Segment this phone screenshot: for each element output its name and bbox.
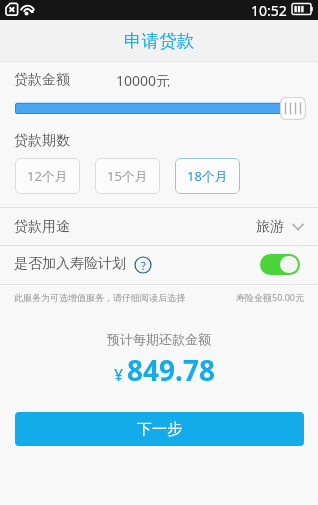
staticText: 10:52 [251,1,287,20]
staticText: 18个月 [187,167,228,185]
button[interactable] [260,254,300,275]
staticText: 15个月 [107,167,148,185]
staticText: 10000元 [116,71,171,87]
staticText: 贷款金额 [14,71,70,87]
staticText: 下一步 [137,420,182,439]
button[interactable]: 12个月 [15,158,80,194]
staticText: 贷款用途 [14,218,70,236]
staticText: 预计每期还款金额 [107,331,211,347]
button[interactable]: 贷款用途 [0,208,318,245]
staticText: 849.78 [127,351,215,389]
staticText: 是否加入寿险计划 [14,255,126,273]
button[interactable]: 帮助说明 [134,256,152,274]
button[interactable]: 15个月 [95,158,160,194]
staticText: ¥ [114,364,124,386]
button[interactable]: 18个月 [175,158,240,194]
staticText: 12个月 [27,167,68,185]
staticText: ? [141,258,146,273]
staticText: 此服务为可选增值服务，请仔细阅读后选择 [14,292,185,303]
button[interactable]: 下一步 [15,412,304,446]
staticText: 申请贷款 [124,30,194,52]
staticText: 寿险金额50.00元 [236,291,305,303]
staticText: 贷款期数 [14,132,70,150]
staticText: 旅游 [256,218,284,236]
